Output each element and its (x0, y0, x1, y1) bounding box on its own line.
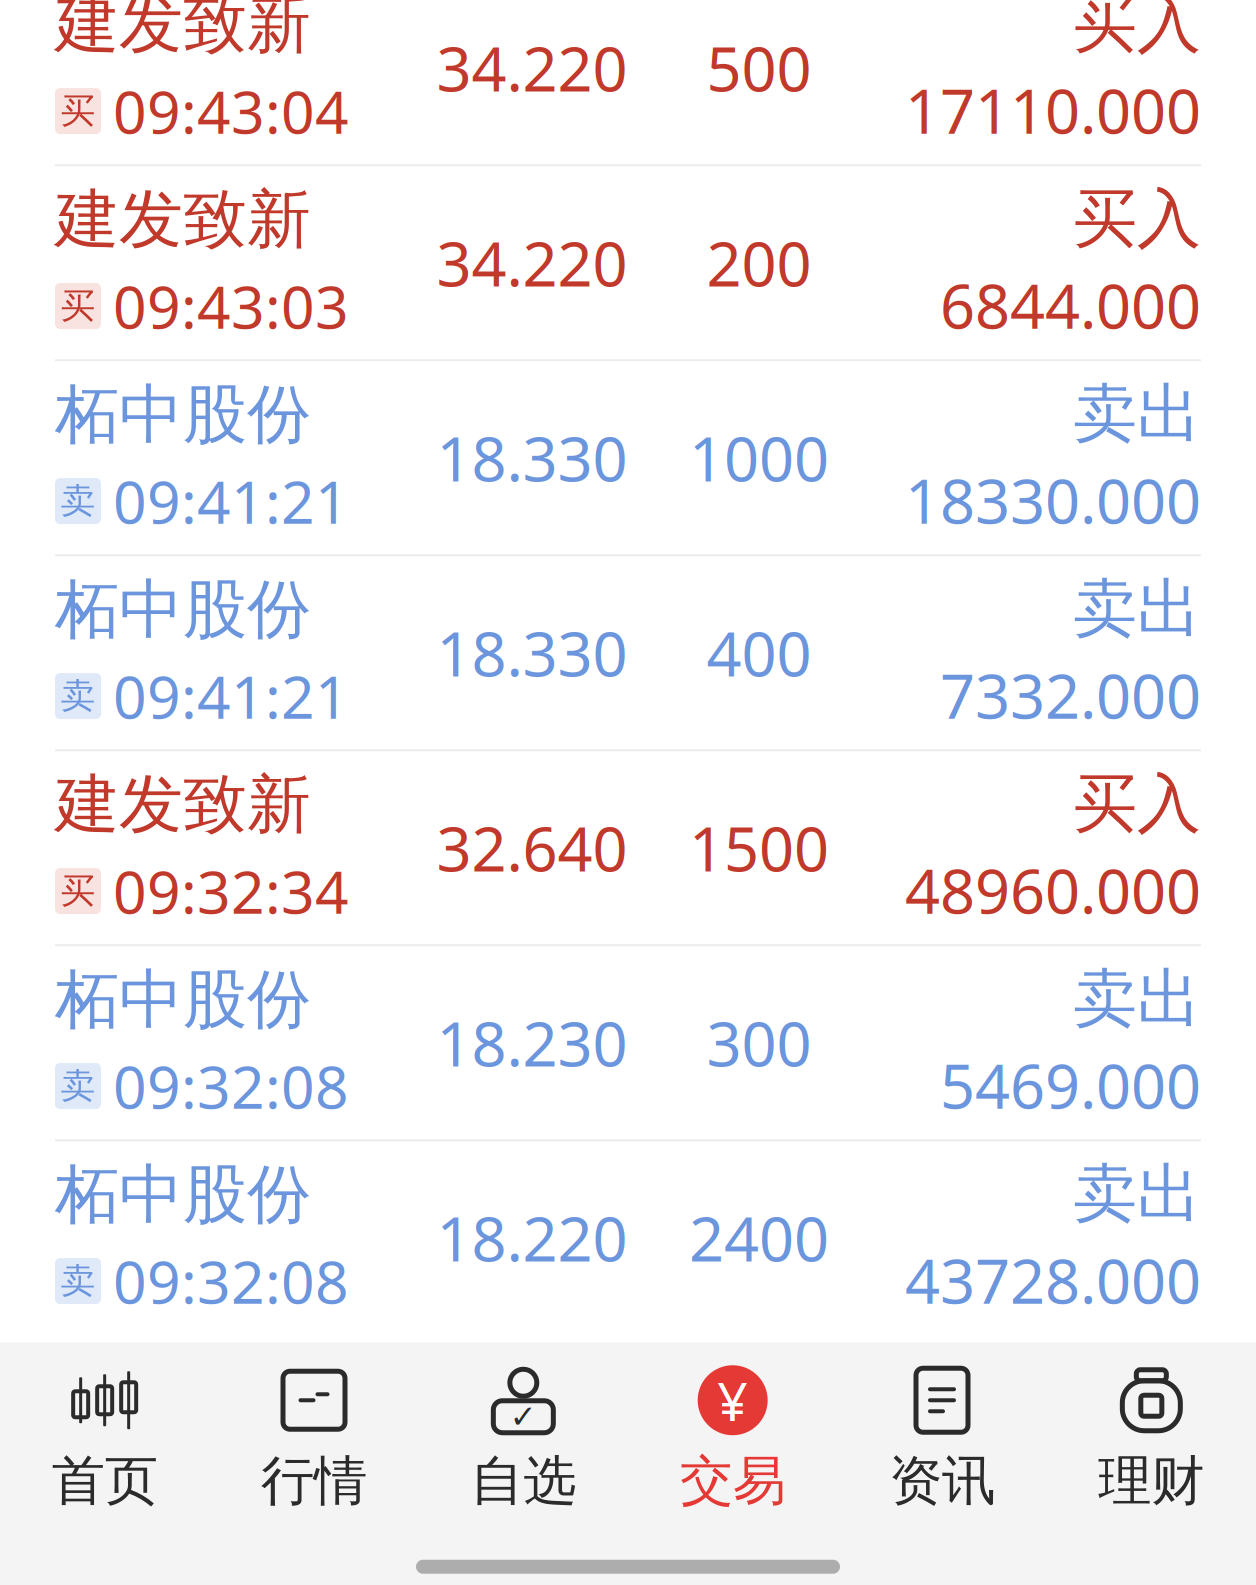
staticText: 18.220 (436, 1197, 627, 1278)
staticText: 自选 (470, 1448, 576, 1514)
staticText: 1500 (689, 807, 829, 888)
staticText: 买入 (1073, 765, 1201, 843)
button[interactable]: ✓ (419, 1342, 628, 1530)
button[interactable]: 首页 (0, 1342, 209, 1530)
button[interactable]: 建发致新 (0, 751, 1256, 944)
staticText: 建发致新 (55, 0, 311, 64)
button[interactable]: 资讯 (837, 1342, 1047, 1530)
staticText: 48960.000 (905, 849, 1201, 931)
staticText: 买 (60, 285, 95, 327)
button[interactable]: 建发致新 (0, 0, 1256, 164)
staticText: 09:41:21 (113, 657, 349, 735)
staticText: 柘中股份 (55, 960, 311, 1039)
staticText: 柘中股份 (55, 1155, 311, 1234)
staticText: 18.330 (436, 612, 627, 693)
staticText: 买 (60, 870, 95, 912)
button[interactable]: 理财 (1047, 1342, 1256, 1530)
staticText: 柘中股份 (55, 570, 311, 649)
staticText: ¥ (717, 1365, 748, 1436)
staticText: 09:32:08 (113, 1047, 349, 1125)
button[interactable]: 柘中股份 (0, 1141, 1256, 1334)
staticText: 34.220 (436, 222, 627, 303)
staticText: 卖出 (1073, 960, 1201, 1038)
staticText: 17110.000 (905, 69, 1201, 151)
staticText: 200 (706, 222, 811, 303)
staticText: 卖出 (1073, 375, 1201, 453)
staticText: 32.640 (436, 807, 627, 888)
button[interactable]: 行情 (209, 1342, 419, 1530)
staticText: 交易 (680, 1448, 786, 1514)
staticText: ✓ (510, 1399, 537, 1435)
staticText: 买入 (1073, 0, 1201, 63)
staticText: 400 (706, 612, 811, 693)
staticText: 7332.000 (940, 654, 1201, 736)
staticText: 09:32:34 (113, 852, 349, 930)
staticText: 500 (706, 27, 811, 108)
staticText: 43728.000 (905, 1239, 1201, 1321)
staticText: 行情 (261, 1448, 367, 1514)
staticText: 300 (706, 1002, 811, 1083)
staticText: 09:41:21 (113, 462, 349, 540)
staticText: 理财 (1098, 1448, 1204, 1514)
staticText: 柘中股份 (55, 375, 311, 454)
staticText: 2400 (689, 1197, 829, 1278)
staticText: 6844.000 (940, 264, 1201, 346)
staticText: 34.220 (436, 27, 627, 108)
staticText: 18330.000 (905, 459, 1201, 541)
staticText: 资讯 (889, 1448, 995, 1514)
staticText: 买 (60, 90, 95, 132)
staticText: 09:43:03 (113, 267, 349, 345)
staticText: 建发致新 (55, 765, 311, 844)
staticText: 首页 (52, 1448, 158, 1514)
staticText: 建发致新 (55, 180, 311, 259)
button[interactable]: ¥ (628, 1342, 837, 1530)
staticText: 卖 (60, 675, 95, 717)
staticText: 18.230 (436, 1002, 627, 1083)
button[interactable]: 柘中股份 (0, 946, 1256, 1139)
staticText: 卖 (60, 1260, 95, 1302)
staticText: 09:43:04 (113, 72, 349, 150)
button[interactable]: 建发致新 (0, 166, 1256, 359)
staticText: 卖 (60, 1065, 95, 1107)
staticText: 卖出 (1073, 570, 1201, 648)
staticText: 卖 (60, 480, 95, 522)
button[interactable]: 柘中股份 (0, 556, 1256, 749)
staticText: 1000 (689, 417, 829, 498)
staticText: 买入 (1073, 180, 1201, 258)
staticText: 09:32:08 (113, 1242, 349, 1320)
button[interactable]: 柘中股份 (0, 361, 1256, 554)
staticText: 18.330 (436, 417, 627, 498)
staticText: 卖出 (1073, 1155, 1201, 1233)
staticText: 5469.000 (940, 1044, 1201, 1126)
